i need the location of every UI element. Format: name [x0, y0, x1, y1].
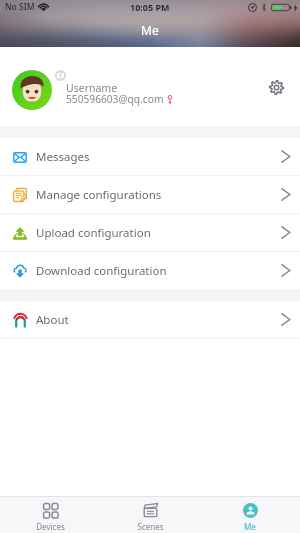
button[interactable]: Messages — [0, 138, 300, 175]
staticText: Scenes — [137, 521, 164, 532]
staticText: Me — [141, 22, 159, 38]
button[interactable]: About — [0, 301, 300, 338]
button[interactable]: Devices — [0, 498, 100, 532]
staticText: 550596603@qq.com — [66, 92, 164, 106]
button[interactable]: Upload configuration — [0, 214, 300, 251]
staticText: About — [36, 312, 69, 328]
button[interactable]: Me — [200, 498, 300, 532]
button[interactable]: Manage configurations — [0, 176, 300, 213]
staticText: 10:05 PM — [130, 1, 170, 13]
button[interactable]: Download configuration — [0, 252, 300, 289]
staticText: Username — [66, 81, 118, 95]
staticText: Download configuration — [36, 263, 167, 279]
staticText: Me — [244, 521, 256, 532]
button[interactable]: Settings — [256, 67, 296, 107]
staticText: Upload configuration — [36, 225, 151, 241]
button[interactable]: Scenes — [100, 498, 200, 532]
staticText: Devices — [36, 521, 65, 532]
staticText: Manage configurations — [36, 187, 162, 203]
staticText: No SIM — [5, 1, 35, 13]
staticText: Messages — [36, 149, 90, 165]
button[interactable] — [0, 47, 300, 126]
